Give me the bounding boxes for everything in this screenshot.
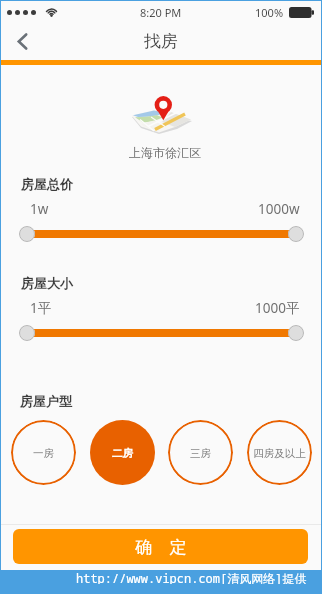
button[interactable]: 四房及以上: [247, 420, 312, 485]
button[interactable]: Max handle: [288, 226, 304, 242]
button[interactable]: 确 定: [13, 529, 308, 564]
staticText: 三房: [190, 447, 211, 460]
staticText: 1w: [30, 200, 49, 218]
button[interactable]: Min handle: [19, 325, 35, 341]
button[interactable]: 一房: [11, 420, 76, 485]
staticText: 一房: [33, 447, 54, 460]
staticText: 房屋大小: [21, 275, 73, 291]
button[interactable]: Min handle: [19, 226, 35, 242]
staticText: 确 定: [135, 535, 187, 558]
staticText: http://www.vipcn.com[清风网络]提供: [76, 570, 307, 584]
staticText: 房屋户型: [20, 393, 72, 409]
staticText: 二房: [112, 447, 133, 460]
staticText: 找房: [144, 31, 178, 52]
staticText: 四房及以上: [253, 447, 306, 460]
button[interactable]: 二房: [90, 420, 155, 485]
staticText: 100%: [255, 5, 284, 20]
staticText: 8:20 PM: [140, 5, 182, 20]
button[interactable]: 三房: [168, 420, 233, 485]
staticText: 房屋总价: [21, 176, 73, 192]
staticText: 1平: [30, 299, 52, 317]
staticText: 1000w: [258, 200, 300, 218]
staticText: 1000平: [255, 299, 300, 317]
button[interactable]: Max handle: [288, 325, 304, 341]
button[interactable]: Back: [5, 23, 39, 59]
staticText: 上海市徐汇区: [129, 145, 201, 160]
